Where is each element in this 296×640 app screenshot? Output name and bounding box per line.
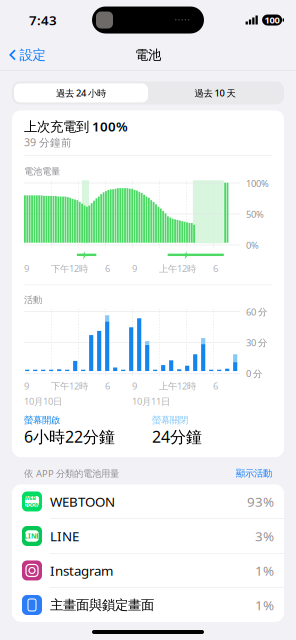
button[interactable]: 設定 bbox=[0, 42, 45, 68]
staticText: 39 分鐘前 bbox=[24, 135, 72, 149]
staticText: 100% bbox=[246, 177, 269, 190]
staticText: 電池電量 bbox=[24, 166, 60, 177]
staticText: 10月10日 bbox=[24, 395, 62, 407]
staticText: 100 bbox=[265, 14, 280, 26]
staticText: 6 bbox=[105, 262, 110, 275]
staticText: 24分鐘 bbox=[152, 426, 202, 447]
staticText: 螢幕開啟 bbox=[24, 414, 60, 426]
staticText: 依 APP 分類的電池用量 bbox=[24, 467, 119, 479]
staticText: 6 bbox=[105, 380, 110, 392]
staticText: 9 bbox=[132, 380, 137, 392]
staticText: 6 bbox=[213, 262, 218, 275]
staticText: LINE bbox=[50, 527, 79, 545]
staticText: 0% bbox=[246, 239, 259, 251]
staticText: 0 分 bbox=[246, 367, 262, 380]
button[interactable]: LINE bbox=[12, 519, 284, 553]
staticText: 顯示活動 bbox=[236, 468, 272, 479]
button[interactable]: Instagram bbox=[12, 553, 284, 588]
staticText: 過去 24 小時 bbox=[56, 87, 106, 99]
button[interactable]: 過去 10 天 bbox=[148, 83, 282, 102]
staticText: 9 bbox=[24, 262, 29, 275]
button[interactable]: WEB TOON bbox=[12, 484, 284, 519]
staticText: 7:43 bbox=[29, 11, 57, 29]
staticText: 活動 bbox=[24, 294, 42, 306]
staticText: 下午12時 bbox=[51, 380, 88, 392]
staticText: 螢幕關閉 bbox=[152, 414, 188, 426]
staticText: 下午12時 bbox=[51, 262, 88, 275]
button[interactable]: 主畫面與鎖定畫面 bbox=[12, 588, 284, 622]
staticText: 9 bbox=[132, 262, 137, 275]
button[interactable]: 過去 24 小時 bbox=[14, 83, 148, 102]
button[interactable]: 顯示活動 bbox=[236, 468, 272, 479]
staticText: LINE bbox=[24, 532, 40, 540]
staticText: 上次充電到 100% bbox=[24, 117, 128, 135]
staticText: 1% bbox=[255, 596, 274, 614]
staticText: 上午12時 bbox=[159, 262, 196, 275]
staticText: 60 分 bbox=[246, 306, 267, 318]
staticText: 電池 bbox=[135, 47, 161, 63]
staticText: WEBTOON bbox=[50, 493, 115, 510]
staticText: 10月11日 bbox=[132, 395, 170, 407]
staticText: 30 分 bbox=[246, 336, 267, 349]
staticText: 過去 10 天 bbox=[194, 87, 235, 99]
staticText: 設定 bbox=[19, 47, 45, 63]
staticText: 6 bbox=[213, 380, 218, 392]
staticText: 9 bbox=[24, 380, 29, 392]
staticText: 1% bbox=[255, 562, 274, 579]
staticText: 6小時22分鐘 bbox=[24, 426, 115, 447]
staticText: 50% bbox=[246, 208, 264, 220]
staticText: WEB TOON bbox=[24, 494, 39, 509]
staticText: 主畫面與鎖定畫面 bbox=[50, 597, 154, 613]
staticText: 93% bbox=[247, 493, 274, 510]
staticText: 3% bbox=[255, 527, 274, 545]
staticText: 上午12時 bbox=[159, 380, 196, 392]
staticText: Instagram bbox=[50, 562, 113, 579]
